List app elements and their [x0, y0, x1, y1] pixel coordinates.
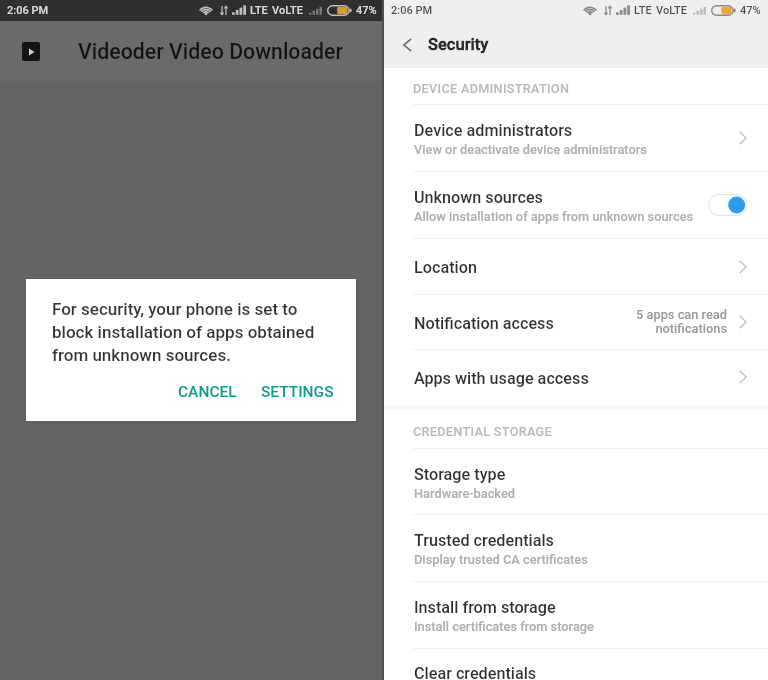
button[interactable]: Unknown sources toggle: [708, 194, 747, 216]
button[interactable]: Notification access: [384, 295, 768, 349]
button[interactable]: Device administrators: [384, 105, 768, 171]
staticText: Install from storage: [414, 598, 556, 617]
staticText: Clear credentials: [414, 664, 537, 680]
staticText: View or deactivate device administrators: [414, 142, 647, 157]
button[interactable]: Location: [384, 239, 768, 294]
staticText: LTE: [250, 4, 268, 17]
staticText: Notification access: [414, 314, 554, 333]
staticText: 47%: [356, 4, 377, 17]
staticText: Install certificates from storage: [414, 619, 594, 634]
staticText: Display trusted CA certificates: [414, 552, 588, 567]
button[interactable]: Apps with usage access: [384, 350, 768, 404]
staticText: CREDENTIAL STORAGE: [413, 424, 552, 439]
staticText: Security: [428, 35, 489, 54]
staticText: Hardware-backed: [414, 486, 516, 501]
staticText: VoLTE: [272, 4, 303, 17]
button[interactable]: Trusted credentials: [384, 515, 768, 581]
staticText: 2:06 PM: [391, 4, 433, 17]
staticText: 47%: [740, 4, 761, 17]
staticText: Trusted credentials: [414, 531, 554, 550]
staticText: DEVICE ADMINISTRATION: [413, 81, 570, 96]
button[interactable]: Install from storage: [384, 582, 768, 648]
staticText: For security, your phone is set to block…: [52, 299, 315, 365]
staticText: CANCEL: [178, 383, 237, 401]
staticText: Allow installation of apps from unknown …: [414, 209, 694, 224]
staticText: SETTINGS: [261, 383, 334, 401]
staticText: 5 apps can read notifications: [636, 307, 727, 337]
staticText: Apps with usage access: [414, 369, 589, 388]
staticText: Storage type: [414, 465, 506, 484]
button[interactable]: Storage type: [384, 449, 768, 514]
button[interactable]: Back: [394, 32, 420, 58]
staticText: Device administrators: [414, 121, 573, 140]
button[interactable]: Clear credentials: [384, 649, 768, 680]
button[interactable]: CANCEL: [170, 375, 245, 409]
staticText: VoLTE: [656, 4, 687, 17]
button[interactable]: Unknown sources: [384, 172, 768, 238]
staticText: LTE: [634, 4, 652, 17]
staticText: 2:06 PM: [7, 4, 49, 17]
staticText: Videoder Video Downloader: [78, 39, 343, 64]
staticText: Unknown sources: [414, 188, 543, 207]
button[interactable]: App icon: [22, 42, 40, 61]
staticText: Location: [414, 258, 477, 277]
button[interactable]: SETTINGS: [253, 375, 342, 409]
